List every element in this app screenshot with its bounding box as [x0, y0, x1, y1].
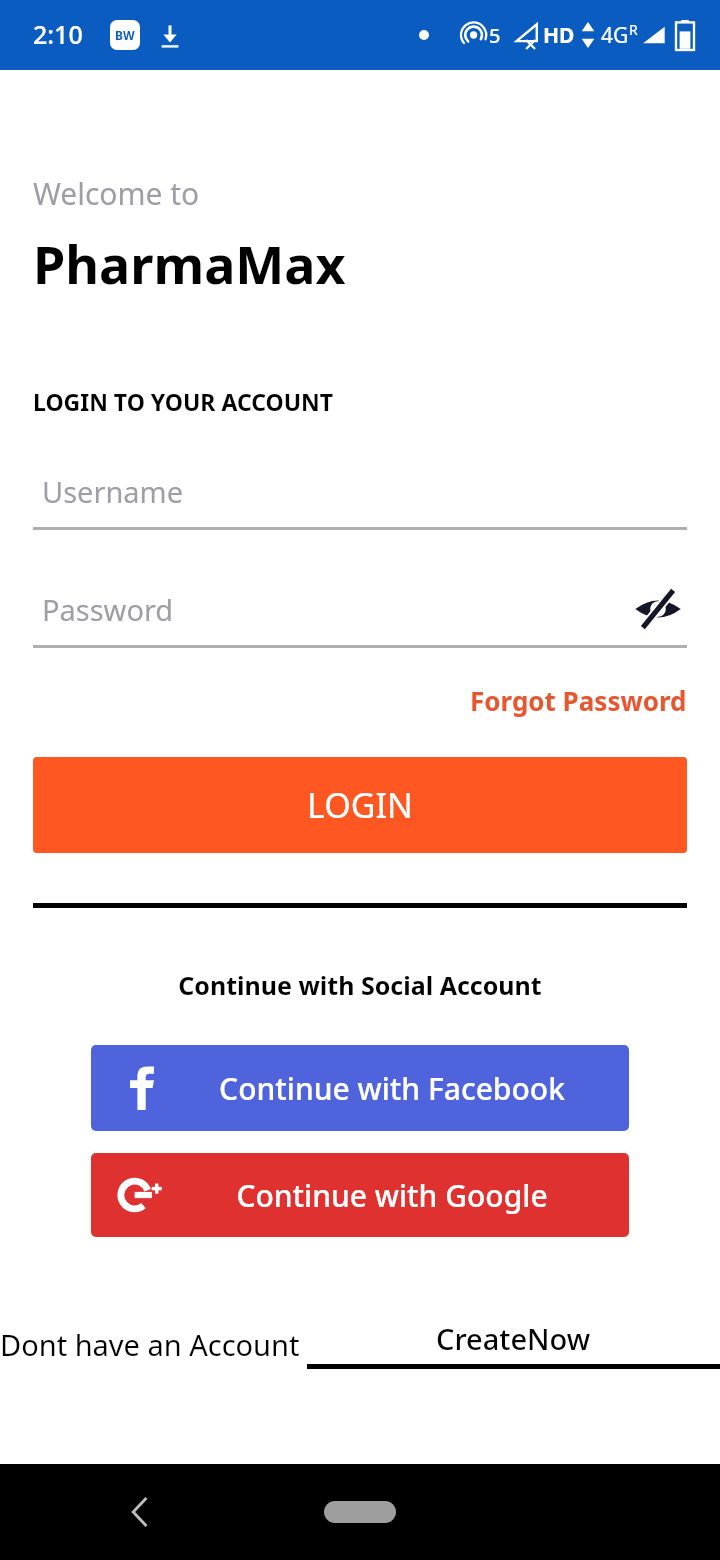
staticText: Continue with Facebook: [219, 1068, 565, 1109]
button[interactable]: Forgot Password: [470, 683, 687, 718]
staticText: BW: [115, 27, 135, 43]
staticText: HD: [543, 21, 575, 50]
button[interactable]: CreateNow: [307, 1319, 720, 1369]
staticText: Password: [42, 590, 174, 629]
staticText: Continue with Social Account: [178, 968, 542, 1002]
button[interactable]: Password: [33, 583, 687, 635]
button[interactable]: Continue with Facebook: [91, 1045, 629, 1131]
staticText: LOGIN: [307, 782, 413, 828]
staticText: CreateNow: [436, 1319, 591, 1358]
staticText: Dont have an Account: [0, 1325, 307, 1364]
staticText: Username: [42, 472, 184, 511]
staticText: 2:10: [33, 17, 83, 51]
staticText: 5: [489, 22, 501, 49]
staticText: LOGIN TO YOUR ACCOUNT: [33, 386, 334, 417]
staticText: Forgot Password: [470, 683, 687, 718]
button[interactable]: Back: [108, 1480, 172, 1544]
staticText: R: [629, 20, 638, 39]
button[interactable]: LOGIN: [33, 757, 687, 853]
staticText: Continue with Google: [236, 1175, 548, 1216]
staticText: 4G: [601, 21, 629, 50]
button[interactable]: Username: [33, 465, 687, 517]
button[interactable]: Toggle password visibility: [629, 583, 687, 635]
staticText: Welcome to: [33, 173, 200, 214]
button[interactable]: Continue with Google: [91, 1153, 629, 1237]
button[interactable]: Home: [324, 1501, 396, 1523]
staticText: PharmaMax: [33, 228, 346, 299]
